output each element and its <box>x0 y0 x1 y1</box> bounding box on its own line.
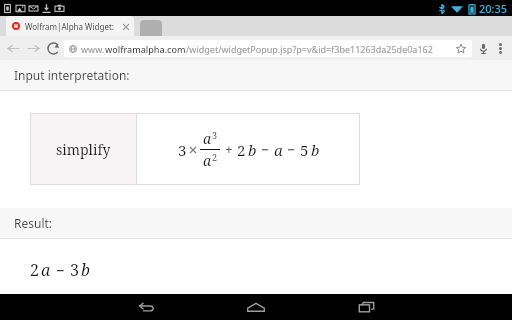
staticText: 3 <box>212 129 218 141</box>
button[interactable]: Close tab <box>120 21 131 32</box>
staticText: 2 <box>30 259 39 281</box>
staticText: b <box>248 140 257 160</box>
button[interactable]: Back <box>3 38 23 58</box>
staticText: a <box>41 259 51 281</box>
button[interactable]: Wolfram|Alpha Widget: <box>6 16 134 36</box>
staticText: 2 <box>212 151 218 163</box>
button[interactable]: Voice search <box>475 40 491 56</box>
staticText: 3 <box>70 259 79 281</box>
staticText: Input interpretation: <box>14 67 130 83</box>
staticText: 2 <box>237 140 246 160</box>
staticText: Result: <box>14 215 53 231</box>
button[interactable]: Reload <box>43 38 63 58</box>
staticText: simplify <box>56 140 111 159</box>
staticText: − <box>261 140 270 159</box>
staticText: www. <box>81 43 105 55</box>
button[interactable]: Recent apps <box>311 294 421 320</box>
staticText: + <box>225 140 233 159</box>
staticText: b <box>81 259 90 281</box>
staticText: 5 <box>300 140 309 160</box>
staticText: a <box>203 151 212 170</box>
staticText: wolframalpha.com <box>105 43 186 55</box>
button[interactable]: More options <box>492 40 508 56</box>
staticText: b <box>311 140 320 160</box>
button[interactable]: Home <box>201 294 311 320</box>
staticText: a <box>203 129 212 148</box>
button[interactable]: simplify <box>30 113 360 185</box>
button[interactable]: Forward <box>23 38 43 58</box>
button[interactable]: www. <box>64 40 472 57</box>
staticText: 20:35 <box>479 1 508 16</box>
staticText: Wolfram|Alpha Widget: <box>25 21 114 32</box>
staticText: a <box>274 140 283 160</box>
button[interactable]: Back <box>91 294 201 320</box>
button[interactable]: Bookmark <box>455 43 467 55</box>
staticText: − <box>56 260 65 280</box>
staticText: /widget/widgetPopup.jsp?p=v&id=f3be11263… <box>186 43 433 55</box>
staticText: − <box>287 140 296 159</box>
staticText: 3 <box>178 140 187 160</box>
button[interactable]: New tab <box>140 20 162 36</box>
